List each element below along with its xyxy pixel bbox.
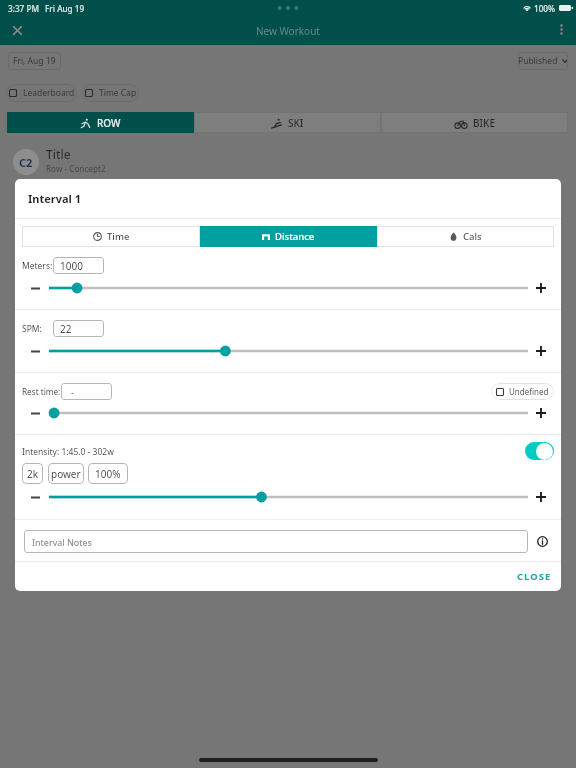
- button[interactable]: Close: [7, 20, 27, 40]
- button[interactable]: BIKE: [381, 112, 568, 133]
- staticText: Time: [107, 230, 130, 243]
- button[interactable]: Slider: [43, 342, 535, 360]
- staticText: 3:37 PM: [8, 3, 39, 14]
- button[interactable]: -: [61, 383, 112, 400]
- button[interactable]: Distance: [200, 226, 377, 247]
- button[interactable]: Decrease: [27, 342, 43, 360]
- button[interactable]: Time Cap: [82, 84, 139, 102]
- staticText: Title: [46, 146, 71, 162]
- staticText: ROW: [97, 116, 121, 130]
- staticText: SKI: [288, 116, 304, 130]
- staticText: Time Cap: [99, 87, 137, 99]
- staticText: C2: [19, 155, 33, 170]
- button[interactable]: Decrease: [27, 488, 43, 506]
- staticText: CLOSE: [517, 570, 552, 583]
- staticText: -: [71, 386, 74, 398]
- staticText: Fri Aug 19: [45, 3, 85, 14]
- staticText: Interval Notes: [32, 536, 92, 548]
- button[interactable]: Fri, Aug 19: [8, 52, 61, 70]
- staticText: New Workout: [256, 24, 320, 38]
- button[interactable]: 1000: [53, 257, 104, 274]
- button[interactable]: Published: [518, 52, 568, 70]
- staticText: 100%: [534, 3, 556, 14]
- button[interactable]: Slider: [43, 404, 535, 422]
- staticText: 100%: [95, 467, 121, 481]
- staticText: Undefined: [509, 386, 549, 397]
- button[interactable]: Decrease: [27, 404, 43, 422]
- button[interactable]: SKI: [194, 112, 381, 133]
- staticText: Published: [518, 55, 558, 67]
- button[interactable]: 22: [53, 320, 104, 337]
- button[interactable]: power: [48, 463, 84, 484]
- button[interactable]: Slider: [43, 279, 535, 297]
- button[interactable]: 2k: [22, 463, 43, 484]
- button[interactable]: Increase: [533, 404, 549, 422]
- staticText: Cals: [463, 230, 482, 243]
- staticText: 1000: [60, 259, 83, 273]
- staticText: power: [51, 467, 81, 481]
- button[interactable]: Info: [534, 530, 551, 553]
- button[interactable]: Cals: [377, 226, 554, 247]
- button[interactable]: Time: [22, 226, 200, 247]
- staticText: 2k: [27, 467, 39, 481]
- button[interactable]: ROW: [7, 112, 194, 133]
- button[interactable]: Increase: [533, 342, 549, 360]
- staticText: Interval 1: [28, 191, 81, 203]
- staticText: 22: [60, 322, 72, 336]
- button[interactable]: CLOSE: [508, 563, 561, 590]
- button[interactable]: 100%: [88, 463, 128, 484]
- staticText: Meters:: [22, 260, 53, 272]
- staticText: SPM:: [22, 323, 42, 335]
- staticText: Distance: [275, 230, 315, 243]
- button[interactable]: Increase: [533, 488, 549, 506]
- staticText: Intensity: 1:45.0 - 302w: [22, 446, 114, 458]
- staticText: Fri, Aug 19: [13, 55, 56, 67]
- button[interactable]: Decrease: [27, 279, 43, 297]
- button[interactable]: Intensity enabled: [525, 442, 554, 460]
- button[interactable]: Increase: [533, 279, 549, 297]
- button[interactable]: Undefined: [491, 383, 554, 400]
- button[interactable]: More options: [551, 19, 571, 39]
- staticText: Leaderboard: [23, 87, 75, 99]
- staticText: Row - Concept2: [46, 163, 106, 174]
- button[interactable]: Slider: [43, 488, 535, 506]
- staticText: BIKE: [473, 116, 495, 130]
- button[interactable]: Leaderboard: [6, 84, 77, 102]
- button[interactable]: Interval Notes: [24, 530, 528, 553]
- staticText: Rest time:: [22, 386, 61, 397]
